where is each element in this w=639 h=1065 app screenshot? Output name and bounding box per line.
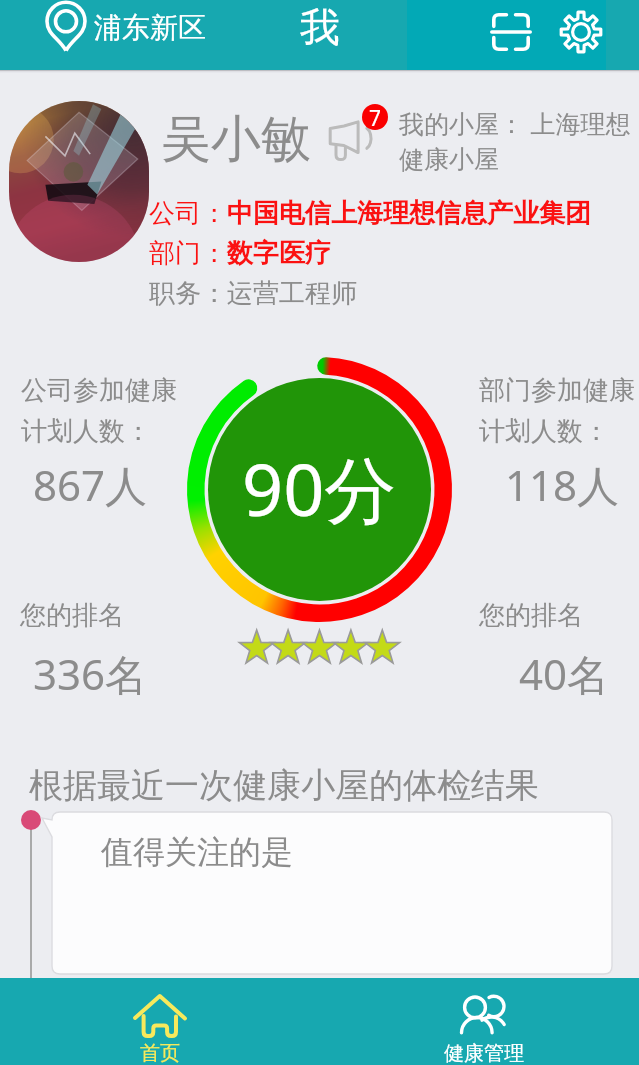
staticText: 职务： [149, 277, 227, 310]
button[interactable]: Settings [559, 10, 603, 54]
button[interactable]: Health score 90 [187, 357, 452, 622]
staticText: 336名 [33, 645, 148, 702]
staticText: 数字医疗 [227, 237, 331, 270]
button[interactable]: 首页 [0, 978, 319, 1065]
button[interactable]: Announcements, 7 new [328, 110, 384, 162]
staticText: 我 [300, 2, 340, 52]
button[interactable]: Scan [491, 12, 531, 52]
staticText: 40名 [519, 645, 610, 702]
staticText: 首页 [140, 1041, 180, 1065]
staticText: 7 [369, 104, 382, 130]
staticText: 部门： [149, 237, 227, 270]
staticText: 118人 [505, 456, 620, 513]
staticText: 健康管理 [444, 1041, 524, 1065]
staticText: 值得关注的是 [101, 832, 293, 872]
staticText: 公司参加健康 计划人数： [21, 374, 177, 447]
staticText: 吴小敏 [161, 108, 311, 171]
staticText: 您的排名 [20, 599, 124, 632]
staticText: 90分 [242, 439, 397, 537]
staticText: 部门参加健康 计划人数： [479, 374, 635, 447]
staticText: 公司： [149, 197, 227, 230]
button[interactable]: Avatar [9, 101, 149, 262]
staticText: 浦东新区 [94, 10, 206, 45]
staticText: 根据最近一次健康小屋的体检结果 [29, 764, 539, 807]
staticText: 中国电信上海理想信息产业集团 [227, 197, 591, 230]
button[interactable]: Location [45, 0, 206, 54]
staticText: 867人 [33, 456, 148, 513]
button[interactable]: 健康管理 [319, 978, 639, 1065]
button[interactable]: 值得关注的是 [52, 812, 612, 975]
other: Location [45, 0, 87, 54]
staticText: 我的小屋： 上海理想 健康小屋 [399, 106, 631, 176]
staticText: 您的排名 [479, 599, 583, 632]
staticText: 运营工程师 [227, 277, 357, 310]
